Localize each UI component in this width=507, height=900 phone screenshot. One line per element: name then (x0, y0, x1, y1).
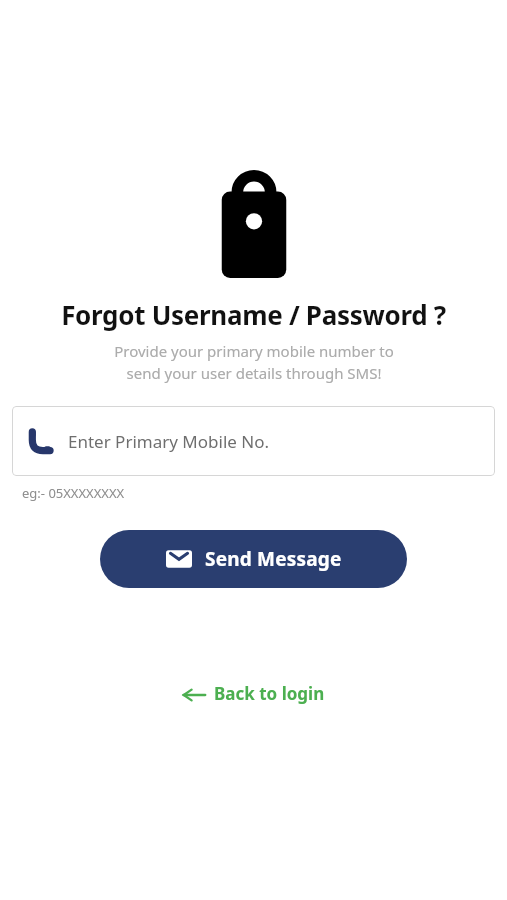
staticText: Send Message (205, 546, 342, 572)
button[interactable]: Send Message (100, 530, 407, 588)
staticText: Forgot Username / Password ? (61, 297, 446, 332)
button[interactable]: Enter Primary Mobile No. (12, 406, 495, 476)
staticText: eg:- 05XXXXXXXX (22, 484, 125, 502)
button[interactable]: Back (172, 676, 335, 711)
other: Back (182, 685, 206, 705)
staticText: Provide your primary mobile number to se… (114, 341, 394, 384)
staticText: Enter Primary Mobile No. (68, 430, 270, 453)
staticText: Back to login (214, 682, 325, 705)
